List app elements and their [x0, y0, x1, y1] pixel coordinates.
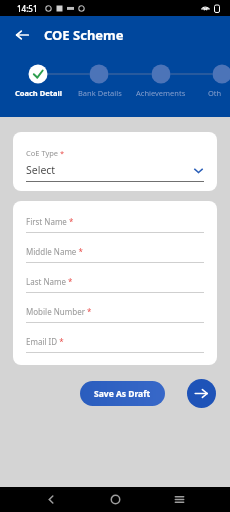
button[interactable]: First Name *: [26, 216, 204, 233]
button[interactable]: Home: [102, 487, 128, 512]
staticText: Bank Details: [78, 88, 122, 98]
button[interactable]: Oth: [191, 88, 230, 98]
button[interactable]: Back: [38, 487, 64, 512]
button[interactable]: Save As Draft: [80, 381, 165, 406]
staticText: First Name *: [26, 216, 74, 227]
button[interactable]: Mobile Number *: [26, 306, 204, 323]
staticText: Oth: [208, 88, 222, 98]
staticText: Middle Name *: [26, 246, 83, 257]
staticText: Save As Draft: [94, 388, 151, 400]
staticText: Achievements: [136, 88, 186, 98]
staticText: 14:51: [17, 3, 38, 14]
staticText: Coach Detail: [15, 88, 62, 98]
button[interactable]: Back: [12, 25, 32, 45]
button[interactable]: CoE Type *: [13, 132, 217, 191]
staticText: Email ID *: [26, 336, 64, 347]
button[interactable]: Recents: [166, 487, 192, 512]
staticText: Mobile Number *: [26, 306, 92, 317]
button[interactable]: Last Name *: [26, 276, 204, 293]
button[interactable]: Email ID *: [26, 336, 204, 353]
button[interactable]: Bank Details: [69, 88, 130, 98]
staticText: COE Scheme: [44, 26, 124, 44]
button[interactable]: Achievements: [130, 88, 191, 98]
button[interactable]: Middle Name *: [26, 246, 204, 263]
staticText: Last Name *: [26, 276, 73, 287]
button[interactable]: Next: [187, 379, 216, 408]
staticText: CoE Type *: [26, 148, 65, 158]
button[interactable]: Coach Detail: [8, 88, 69, 98]
staticText: Select: [26, 163, 56, 177]
